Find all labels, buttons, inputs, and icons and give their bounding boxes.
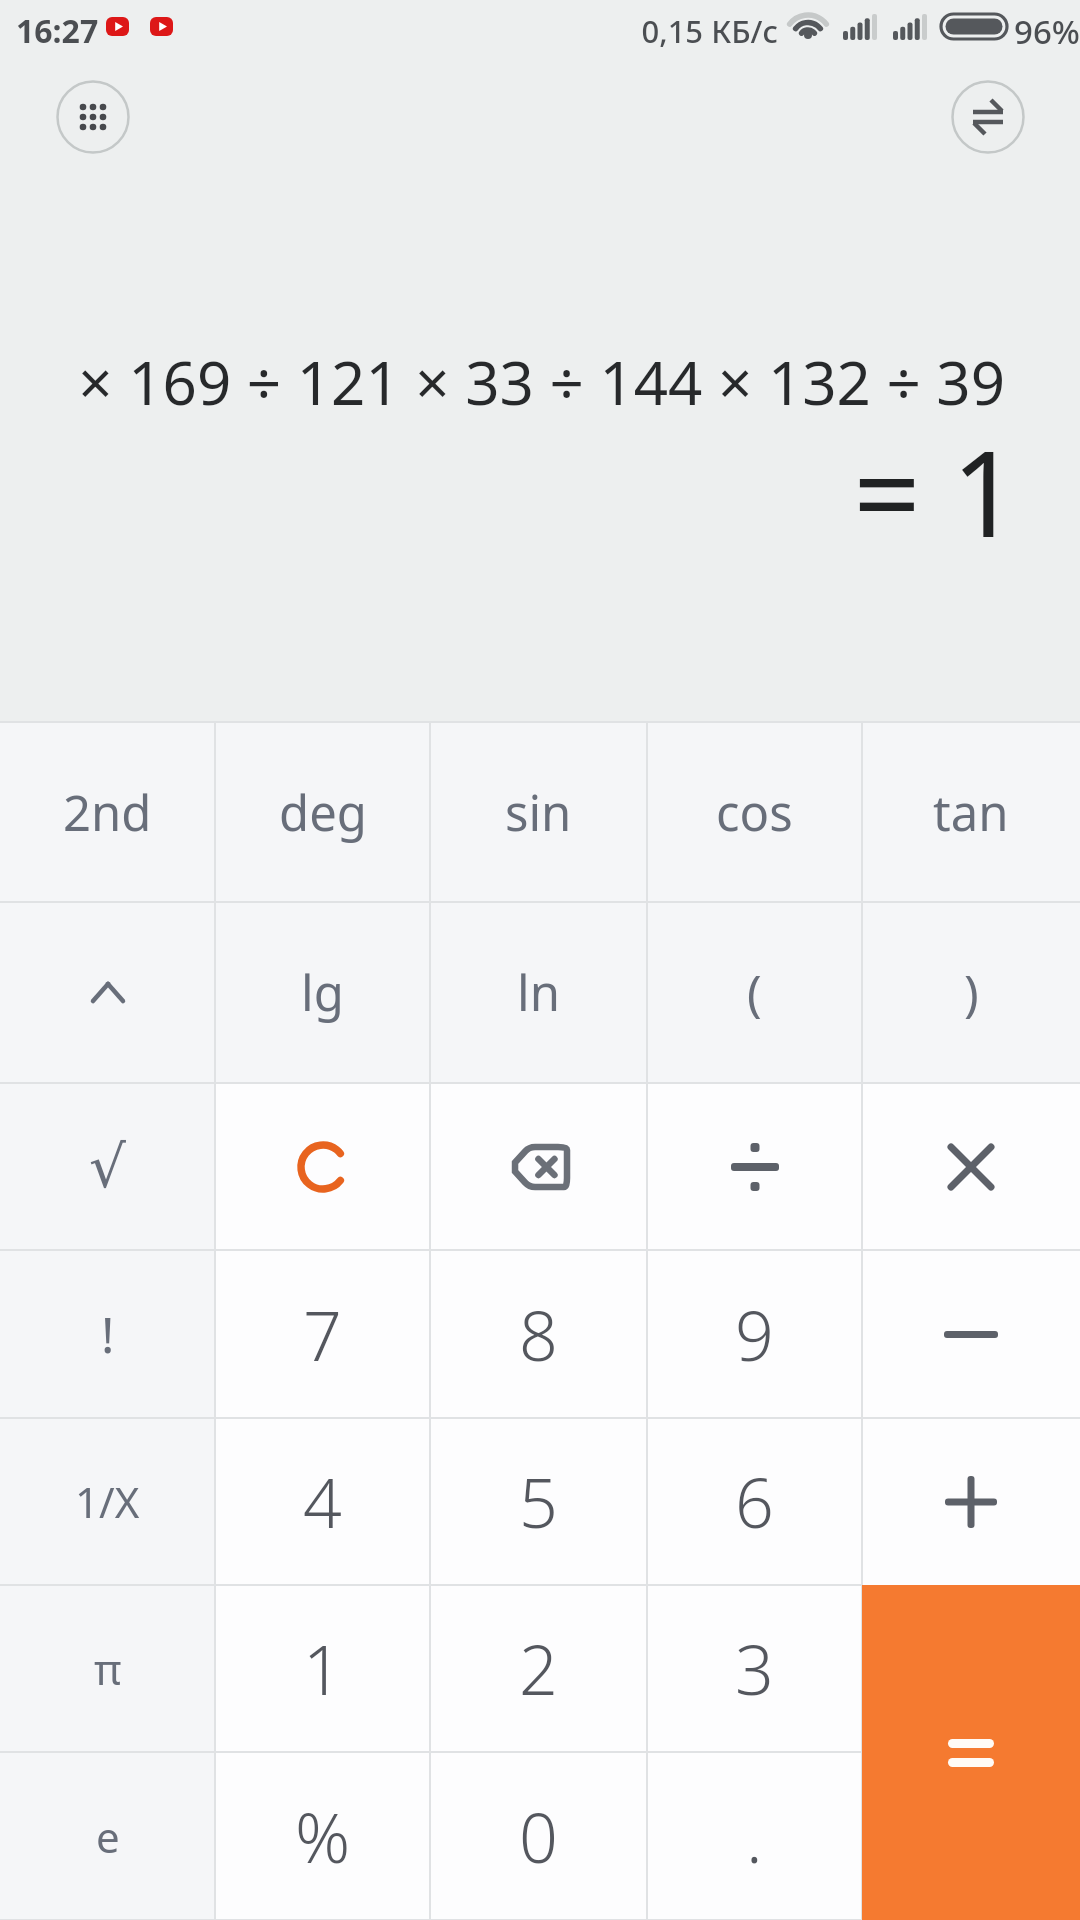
staticText: 3 [735,1622,774,1715]
button[interactable]: √ [0,1083,215,1250]
staticText: ! [101,1300,115,1368]
staticText: 0,15 КБ/с [620,10,778,52]
button[interactable] [862,1418,1080,1585]
button[interactable]: 1 [215,1585,430,1752]
button[interactable]: lg [215,902,430,1083]
staticText: . [746,1790,763,1883]
button[interactable] [430,1083,647,1250]
staticText: 96% [1014,9,1080,54]
button[interactable]: % [215,1752,430,1920]
staticText: 1/X [75,1473,140,1530]
staticText: deg [279,779,367,846]
button[interactable]: 2nd [0,722,215,902]
button[interactable] [215,1083,430,1250]
button[interactable]: ! [0,1250,215,1418]
button[interactable]: 9 [647,1250,862,1418]
staticText: lg [301,959,344,1026]
staticText: 7 [303,1288,342,1381]
staticText: 2nd [63,779,152,846]
button[interactable]: cos [647,722,862,902]
button[interactable] [0,902,215,1083]
button[interactable]: 7 [215,1250,430,1418]
staticText: 0 [519,1790,558,1883]
staticText: 2 [519,1622,558,1715]
staticText: cos [716,779,793,846]
button[interactable]: 3 [647,1585,862,1752]
staticText: sin [505,779,572,846]
button[interactable]: ( [647,902,862,1083]
button[interactable]: ln [430,902,647,1083]
staticText: ) [964,959,979,1026]
button[interactable] [647,1083,862,1250]
staticText: ln [517,959,560,1026]
button[interactable]: sin [430,722,647,902]
button[interactable] [862,1083,1080,1250]
staticText: √ [89,1133,126,1201]
button[interactable]: ) [862,902,1080,1083]
button[interactable]: 4 [215,1418,430,1585]
staticText: 4 [303,1455,342,1548]
button[interactable]: 8 [430,1250,647,1418]
staticText: e [96,1808,120,1865]
staticText: % [295,1790,351,1883]
staticText: 16:27 [16,9,99,53]
button[interactable]: 5 [430,1418,647,1585]
button[interactable]: . [647,1752,862,1920]
button[interactable]: 0 [430,1752,647,1920]
staticText: tan [933,779,1009,846]
button[interactable]: 2 [430,1585,647,1752]
button[interactable]: e [0,1752,215,1920]
button[interactable]: 1/X [0,1418,215,1585]
staticText: 9 [735,1288,774,1381]
button[interactable] [862,1585,1080,1920]
button[interactable] [862,1250,1080,1418]
button[interactable] [951,80,1025,154]
staticText: π [94,1640,122,1697]
button[interactable]: deg [215,722,430,902]
staticText: 8 [519,1288,558,1381]
staticText: 1 [303,1622,342,1715]
staticText: ( [747,959,762,1026]
button[interactable]: tan [862,722,1080,902]
staticText: = 1 [0,411,1019,572]
staticText: 6 [735,1455,774,1548]
button[interactable] [56,80,130,154]
button[interactable]: π [0,1585,215,1752]
staticText: × 169 ÷ 121 × 33 ÷ 144 × 132 ÷ 39 [0,341,1005,423]
button[interactable]: 6 [647,1418,862,1585]
staticText: 5 [519,1455,558,1548]
